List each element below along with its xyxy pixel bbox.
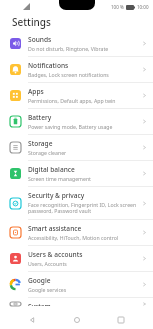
staticText: Storage — [28, 139, 53, 148]
staticText: Google — [28, 276, 51, 285]
staticText: 100 % — [111, 4, 124, 10]
button[interactable]: Users & accounts — [0, 246, 153, 271]
staticText: Sounds — [28, 35, 52, 44]
staticText: Do not disturb, Ringtone, Vibrate — [28, 45, 109, 52]
staticText: Power saving mode, Battery usage — [28, 123, 113, 130]
staticText: Settings — [12, 15, 51, 29]
button[interactable]: Sounds — [0, 31, 153, 56]
staticText: Security & privacy — [28, 191, 85, 200]
button[interactable]: Apps — [0, 83, 153, 108]
button[interactable]: Google — [0, 272, 153, 297]
button[interactable]: Recent apps — [108, 310, 134, 329]
staticText: Users & accounts — [28, 250, 83, 259]
staticText: 10:00 — [137, 4, 149, 10]
button[interactable]: Security & privacy — [0, 187, 153, 219]
staticText: Digital balance — [28, 165, 75, 174]
staticText: Apps — [28, 87, 44, 96]
staticText: System — [28, 302, 51, 306]
staticText: Badges, Lock screen notifications — [28, 71, 109, 78]
button[interactable]: Notifications — [0, 57, 153, 82]
button[interactable]: Home — [64, 310, 90, 329]
staticText: Users, Accounts — [28, 260, 67, 267]
staticText: Accessibility, HiTouch, Motion control — [28, 234, 119, 241]
staticText: Smart assistance — [28, 224, 82, 233]
staticText: Permissions, Default apps, App twin — [28, 97, 116, 104]
button[interactable]: Back — [19, 310, 45, 329]
button[interactable]: Digital balance — [0, 161, 153, 186]
button[interactable]: Storage — [0, 135, 153, 160]
staticText: Screen time management — [28, 175, 91, 182]
button[interactable]: Smart assistance — [0, 220, 153, 245]
staticText: Storage cleaner — [28, 149, 67, 156]
staticText: Google services — [28, 286, 67, 293]
staticText: Face recognition, Fingerprint ID, Lock s… — [28, 201, 138, 215]
button[interactable]: Battery — [0, 109, 153, 134]
staticText: Battery — [28, 113, 52, 122]
staticText: Notifications — [28, 61, 69, 70]
button[interactable]: System — [0, 298, 153, 310]
